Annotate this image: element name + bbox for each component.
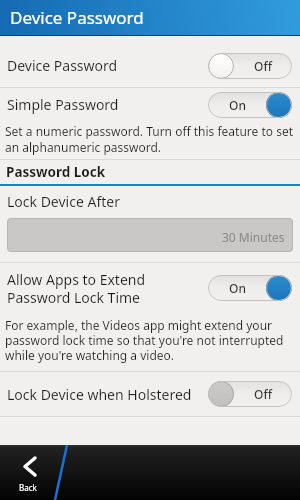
staticText: Device Password [7,56,118,75]
staticText: 30 Minutes [222,229,285,245]
staticText: Lock Device After [7,192,120,211]
staticText: Back [19,482,37,493]
staticText: Lock Device when Holstered [7,385,192,404]
staticText: Off [254,386,272,402]
staticText: Off [254,58,272,74]
staticText: On [229,280,246,296]
staticText: Simple Password [7,95,119,114]
staticText: Allow Apps to Extend Password Lock Time [7,270,146,307]
staticText: Set a numeric password. Turn off this fe… [5,123,294,155]
staticText: On [229,97,246,113]
staticText: Device Password [10,6,144,29]
staticText: Password Lock [6,163,106,181]
staticText: For example, the Videos app might extend… [5,317,284,363]
